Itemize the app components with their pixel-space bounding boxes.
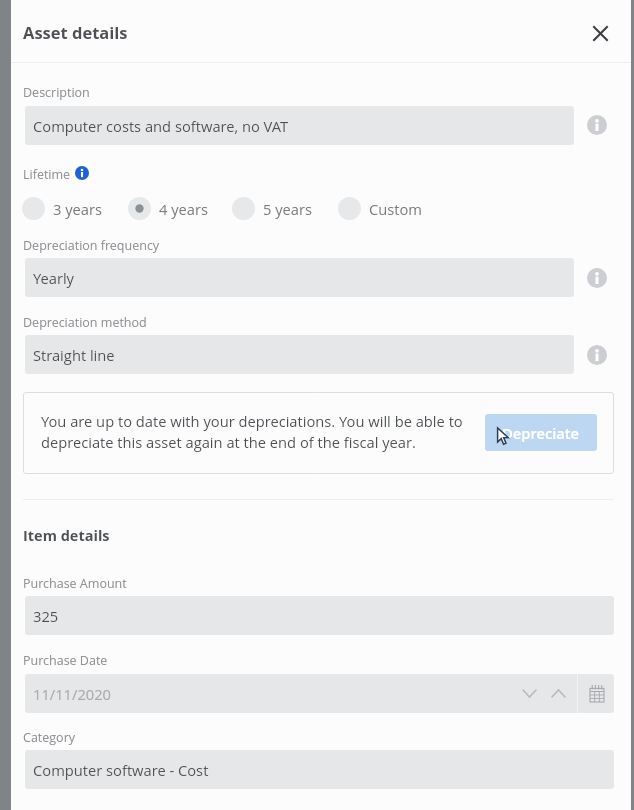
button[interactable]: Straight line [25, 335, 574, 374]
staticText: Description [23, 84, 90, 101]
staticText: 4 years [159, 199, 209, 219]
staticText: Item details [23, 526, 110, 546]
staticText: 3 years [53, 199, 103, 219]
staticText: Category [23, 729, 76, 746]
button[interactable]: Custom [338, 197, 423, 220]
staticText: Depreciation method [23, 314, 147, 331]
button[interactable]: 11/11/2020 [25, 674, 577, 713]
staticText: Depreciate [502, 423, 580, 443]
button[interactable]: 3 years [22, 197, 103, 220]
staticText: Yearly [33, 268, 75, 288]
staticText: Purchase Amount [23, 575, 127, 592]
button[interactable]: Depreciate [485, 414, 597, 451]
staticText: depreciate this asset again at the end o… [41, 432, 416, 452]
staticText: Straight line [33, 345, 115, 365]
button[interactable]: 5 years [232, 197, 313, 220]
staticText: 11/11/2020 [33, 684, 111, 704]
staticText: Purchase Date [23, 652, 108, 669]
staticText: Depreciation frequency [23, 237, 160, 254]
button[interactable]: Computer costs and software, no VAT [25, 106, 574, 145]
button[interactable]: Close [582, 15, 618, 51]
button[interactable]: 4 years [128, 197, 209, 220]
button[interactable]: 325 [25, 596, 614, 635]
staticText: Lifetime [23, 166, 71, 183]
staticText: Custom [369, 199, 423, 219]
staticText: Asset details [23, 21, 128, 43]
staticText: 5 years [263, 199, 313, 219]
staticText: Computer costs and software, no VAT [33, 116, 289, 136]
button[interactable]: Pick date [578, 674, 614, 713]
button[interactable]: Computer software - Cost [25, 750, 614, 789]
button[interactable]: Yearly [25, 258, 574, 297]
staticText: You are up to date with your depreciatio… [41, 411, 463, 431]
staticText: Computer software - Cost [33, 760, 209, 780]
staticText: 325 [33, 606, 59, 626]
